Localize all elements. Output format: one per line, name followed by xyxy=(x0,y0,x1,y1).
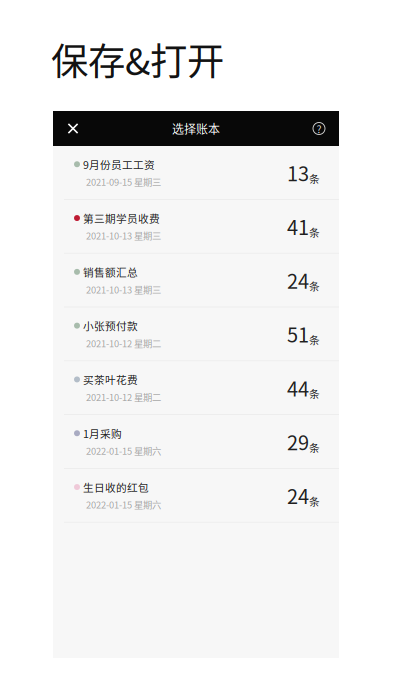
staticText: 2022-01-15 星期六 xyxy=(86,444,161,457)
button[interactable]: 第三期学员收费 xyxy=(53,200,339,253)
staticText: 51 xyxy=(287,319,309,348)
button[interactable]: 销售额汇总 xyxy=(53,254,339,307)
button[interactable]: Close xyxy=(53,111,93,146)
button[interactable]: 买茶叶花费 xyxy=(53,361,339,414)
staticText: 2021-10-13 星期三 xyxy=(86,283,161,296)
staticText: 保存&打开 xyxy=(51,32,224,86)
staticText: 13 xyxy=(287,158,309,187)
staticText: 销售额汇总 xyxy=(83,264,138,279)
staticText: 44 xyxy=(287,373,309,402)
staticText: 9月份员工工资 xyxy=(83,156,155,172)
staticText: 2021-10-12 星期二 xyxy=(86,390,161,404)
staticText: 条 xyxy=(309,332,320,347)
staticText: 24 xyxy=(287,481,309,510)
button[interactable]: 生日收的红包 xyxy=(53,469,339,522)
staticText: 2021-10-13 星期三 xyxy=(86,229,161,242)
staticText: 24 xyxy=(287,266,309,295)
staticText: 小张预付款 xyxy=(83,318,138,333)
staticText: 选择账本 xyxy=(172,120,220,137)
staticText: 41 xyxy=(287,212,309,241)
staticText: 条 xyxy=(309,386,320,401)
staticText: 29 xyxy=(287,427,309,456)
staticText: 条 xyxy=(309,170,320,186)
staticText: 买茶叶花费 xyxy=(83,372,138,387)
staticText: 2022-01-15 星期六 xyxy=(86,498,161,511)
staticText: 2021-09-15 星期三 xyxy=(86,175,161,188)
staticText: 条 xyxy=(309,493,320,509)
staticText: 生日收的红包 xyxy=(83,479,149,495)
staticText: ? xyxy=(316,121,321,136)
staticText: 第三期学员收费 xyxy=(83,210,160,226)
staticText: 1月采购 xyxy=(83,425,122,441)
staticText: 2021-10-12 星期二 xyxy=(86,336,161,350)
button[interactable]: 小张预付款 xyxy=(53,307,339,360)
staticText: 条 xyxy=(309,439,320,455)
staticText: 条 xyxy=(309,224,320,240)
button[interactable]: Help xyxy=(299,111,339,146)
button[interactable]: 9月份员工工资 xyxy=(53,146,339,199)
staticText: 条 xyxy=(309,278,320,293)
button[interactable]: 1月采购 xyxy=(53,415,339,468)
